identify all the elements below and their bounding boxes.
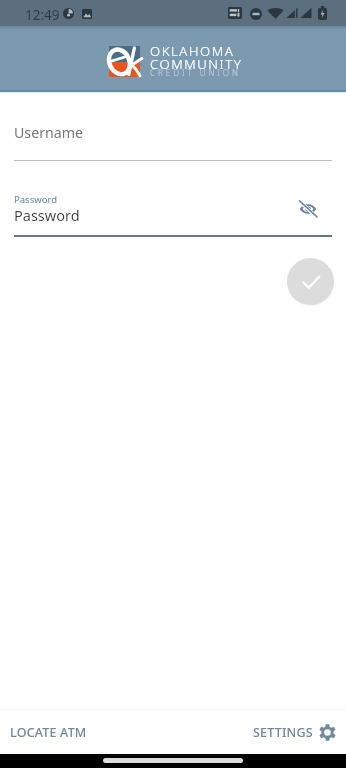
button[interactable]: SETTINGS <box>246 717 346 747</box>
staticText: LOCATE ATM <box>10 724 87 741</box>
staticText: SETTINGS <box>253 724 313 741</box>
staticText: Password <box>14 193 57 206</box>
button[interactable]: Sign in <box>287 258 334 305</box>
staticText: Username <box>14 123 84 142</box>
button[interactable]: LOCATE ATM <box>1 717 95 747</box>
staticText: 12:49 <box>25 6 60 24</box>
staticText: CREDIT UNION <box>150 67 241 78</box>
button[interactable]: Show password <box>293 194 322 223</box>
staticText: Password <box>14 205 80 225</box>
staticText: OKLAHOMA <box>150 42 235 60</box>
staticText: COMMUNITY <box>150 55 243 73</box>
